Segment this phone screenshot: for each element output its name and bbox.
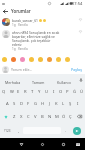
button[interactable]: T: [29, 86, 36, 98]
button[interactable]: Z: [11, 110, 18, 123]
button[interactable]: Ş: [67, 98, 74, 110]
staticText: P: [66, 89, 69, 95]
staticText: Q: [2, 89, 6, 95]
staticText: D: [20, 101, 24, 107]
button[interactable]: Like: [77, 18, 83, 24]
staticText: Yorum ekle...: [11, 67, 33, 72]
button[interactable]: Shift: [0, 110, 11, 123]
button[interactable]: O: [57, 86, 64, 98]
button[interactable]: M: [53, 110, 60, 123]
button[interactable]: C: [25, 110, 32, 123]
staticText: Z: [13, 114, 16, 120]
staticText: Tamam: [32, 80, 45, 85]
button[interactable]: Emoji: [27, 55, 36, 64]
staticText: 1g: [12, 23, 16, 27]
staticText: G: [34, 101, 38, 107]
staticText: A: [6, 101, 9, 107]
button[interactable]: Hide keyboard: [17, 140, 26, 149]
button[interactable]: Ç: [67, 110, 74, 123]
staticText: S: [13, 101, 16, 107]
button[interactable]: X: [18, 110, 25, 123]
button[interactable]: Y: [36, 86, 43, 98]
staticText: K: [55, 101, 58, 107]
staticText: Paylaş: [71, 67, 82, 72]
staticText: Ü: [80, 89, 84, 95]
button[interactable]: G: [32, 98, 39, 110]
button[interactable]: R: [22, 86, 29, 98]
button[interactable]: L: [60, 98, 67, 110]
button[interactable]: Switch keyboard: [73, 140, 82, 149]
button[interactable]: I: [74, 98, 81, 110]
staticText: Yanıtla: [18, 23, 28, 27]
button[interactable]: Ğ: [71, 86, 78, 98]
button[interactable]: Ö: [60, 110, 67, 123]
staticText: burak_sancar_61: [12, 18, 38, 22]
button[interactable]: K: [53, 98, 60, 110]
button[interactable]: Emoji: [36, 55, 45, 64]
staticText: Ş: [69, 101, 72, 107]
button[interactable]: N: [46, 110, 53, 123]
button[interactable]: ,: [15, 123, 22, 138]
button[interactable]: Emoji: [9, 55, 18, 64]
staticText: M: [55, 114, 59, 120]
button[interactable]: Back: [2, 8, 9, 15]
staticText: I: [53, 89, 55, 95]
button[interactable]: Send: [73, 127, 81, 135]
button[interactable]: W: [8, 86, 15, 98]
button[interactable]: V: [32, 110, 39, 123]
staticText: 1g: [12, 47, 16, 51]
button[interactable]: I: [50, 86, 57, 98]
staticText: N: [48, 114, 52, 120]
button[interactable]: Backspace: [74, 110, 85, 123]
button[interactable]: Home: [38, 140, 47, 149]
button[interactable]: ?123: [0, 123, 15, 138]
staticText: ?123: [4, 129, 11, 133]
button[interactable]: Like: [77, 30, 83, 36]
staticText: B: [41, 114, 44, 120]
button[interactable]: Paylaş: [70, 65, 83, 74]
button[interactable]: Recents: [59, 140, 68, 149]
button[interactable]: Tamam: [25, 74, 51, 86]
staticText: E: [17, 89, 20, 95]
button[interactable]: Ü: [78, 86, 85, 98]
staticText: Kullanıcı: [57, 80, 72, 85]
staticText: C: [27, 114, 30, 120]
staticText: Yorumlar: [11, 8, 31, 14]
button[interactable]: Q: [0, 86, 8, 98]
button[interactable]: Merhaba: [0, 74, 25, 86]
button[interactable]: J: [46, 98, 53, 110]
staticText: U: [45, 89, 49, 95]
staticText: Ö: [62, 114, 66, 120]
button[interactable]: F: [25, 98, 32, 110]
staticText: Sonuçlandı. çok teşekkür: [12, 38, 51, 42]
button[interactable]: D: [18, 98, 25, 110]
staticText: X: [20, 114, 23, 120]
button[interactable]: Voice input: [77, 74, 85, 86]
button[interactable]: U: [43, 86, 50, 98]
staticText: Ğ: [73, 89, 77, 95]
button[interactable]: E: [15, 86, 22, 98]
button[interactable]: Emoji: [18, 55, 27, 64]
button[interactable]: Emoji: [45, 55, 54, 64]
button[interactable]: S: [11, 98, 18, 110]
button[interactable]: P: [64, 86, 71, 98]
staticText: I: [77, 101, 79, 107]
staticText: R: [24, 89, 27, 95]
staticText: başarılar, ellerinize sağlık ve: [12, 34, 55, 38]
staticText: H: [41, 101, 45, 107]
staticText: J: [49, 101, 51, 107]
button[interactable]: Emoji: [54, 55, 63, 64]
staticText: T: [31, 89, 34, 95]
staticText: F: [27, 101, 30, 107]
staticText: ahsn.n894 Sonuçlandı en sıcak: [12, 30, 60, 34]
staticText: V: [34, 114, 37, 120]
button[interactable]: B: [39, 110, 46, 123]
staticText: Merhaba: [5, 80, 21, 85]
button[interactable]: H: [39, 98, 46, 110]
button[interactable]: A: [4, 98, 11, 110]
button[interactable]: Kullanıcı: [51, 74, 77, 86]
button[interactable]: Emoji: [63, 55, 72, 64]
button[interactable]: Emoji: [0, 55, 9, 64]
